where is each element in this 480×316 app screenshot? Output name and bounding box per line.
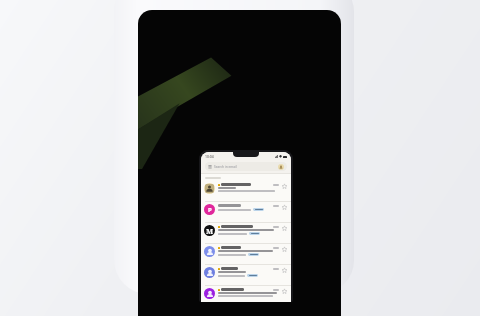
button[interactable]: Sender avatar <box>201 244 291 264</box>
button[interactable] <box>248 253 259 256</box>
button[interactable]: Star conversation <box>281 225 288 232</box>
button[interactable] <box>249 232 260 235</box>
button[interactable]: Star conversation <box>281 288 288 295</box>
button[interactable]: Star conversation <box>281 183 288 190</box>
button[interactable]: Sender avatar <box>204 204 215 215</box>
button[interactable] <box>247 274 258 277</box>
button[interactable]: Star conversation <box>281 267 288 274</box>
button[interactable]: Sender avatar <box>204 225 215 236</box>
button[interactable]: Sender avatar <box>201 286 291 302</box>
staticText: P <box>208 206 212 214</box>
button[interactable]: Sender avatar <box>204 288 215 299</box>
button[interactable]: Sender avatar <box>201 265 291 285</box>
button[interactable]: Open navigation menu <box>208 165 212 169</box>
button[interactable]: Sender avatar <box>204 246 215 257</box>
button[interactable]: Sender avatar <box>201 181 291 201</box>
button[interactable]: Star conversation <box>281 246 288 253</box>
staticText: M <box>206 226 214 236</box>
staticText: Search in email <box>214 165 237 169</box>
button[interactable]: Account <box>278 164 284 170</box>
button[interactable] <box>253 208 264 211</box>
button[interactable]: Star conversation <box>281 204 288 211</box>
staticText: 10:04 <box>205 154 214 159</box>
button[interactable]: Sender avatar <box>204 183 215 194</box>
button[interactable]: Sender avatar <box>201 202 291 222</box>
button[interactable]: Open navigation menu <box>205 162 287 171</box>
button[interactable]: Sender avatar <box>204 267 215 278</box>
button[interactable]: Sender avatar <box>201 223 291 243</box>
